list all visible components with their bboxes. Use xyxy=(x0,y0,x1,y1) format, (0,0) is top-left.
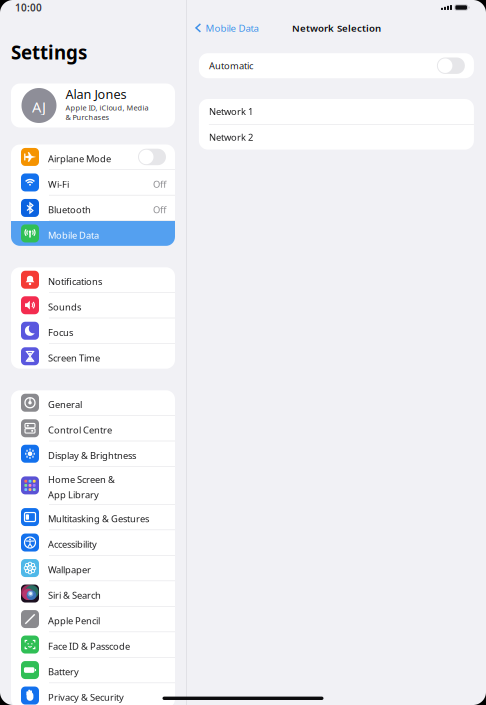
staticText: Network 2 xyxy=(209,131,253,143)
staticText: Bluetooth xyxy=(48,203,91,216)
staticText: Notifications xyxy=(48,275,102,288)
staticText: Wi-Fi xyxy=(48,178,69,190)
staticText: Off xyxy=(153,203,166,216)
staticText: Alan Jones xyxy=(65,85,126,103)
staticText: Multitasking & Gestures xyxy=(48,512,149,525)
staticText: Sounds xyxy=(48,300,81,313)
staticText: 10:00 xyxy=(15,1,42,14)
staticText: Focus xyxy=(48,326,73,339)
button[interactable]: Multitasking & Gestures xyxy=(11,505,175,529)
button[interactable]: Notifications xyxy=(11,267,175,292)
staticText: Apple ID, iCloud, Media xyxy=(65,103,148,113)
staticText: Display & Brightness xyxy=(48,449,136,462)
button[interactable]: Display & Brightness xyxy=(11,441,175,466)
button[interactable]: Control Centre xyxy=(11,416,175,441)
button[interactable]: Mobile Data xyxy=(187,20,262,36)
button[interactable]: Screen Time xyxy=(11,344,175,369)
staticText: Apple Pencil xyxy=(48,614,100,627)
staticText: Control Centre xyxy=(48,423,112,436)
staticText: Privacy & Security xyxy=(48,691,124,703)
button[interactable]: Accessibility xyxy=(11,530,175,555)
staticText: Home Screen & xyxy=(48,473,115,486)
button[interactable]: Wi-Fi xyxy=(11,170,175,195)
staticText: AJ xyxy=(32,97,46,117)
staticText: Settings xyxy=(11,40,87,65)
staticText: & Purchases xyxy=(65,112,109,122)
staticText: Face ID & Passcode xyxy=(48,640,130,652)
staticText: App Library xyxy=(48,488,99,501)
staticText: Off xyxy=(153,178,166,190)
button[interactable]: Face ID & Passcode xyxy=(11,632,175,657)
button[interactable]: Privacy & Security xyxy=(11,683,175,705)
staticText: General xyxy=(48,398,82,411)
staticText: Battery xyxy=(48,665,79,678)
button[interactable]: AJ xyxy=(11,83,175,127)
staticText: Network Selection xyxy=(292,21,381,35)
button[interactable]: Bluetooth xyxy=(11,195,175,220)
staticText: Mobile Data xyxy=(205,21,258,35)
staticText: Airplane Mode xyxy=(48,152,111,165)
button[interactable]: General xyxy=(11,390,175,415)
button[interactable]: Apple Pencil xyxy=(11,607,175,631)
button[interactable]: Network 1 xyxy=(199,99,474,124)
staticText: Screen Time xyxy=(48,351,100,364)
button[interactable]: Battery xyxy=(11,658,175,682)
button[interactable]: Mobile Data xyxy=(11,221,175,246)
button[interactable]: Airplane Mode xyxy=(11,144,175,169)
button[interactable]: Network 2 xyxy=(199,125,474,150)
button[interactable]: Siri & Search xyxy=(11,581,175,606)
button[interactable]: Wallpaper xyxy=(11,556,175,580)
staticText: Wallpaper xyxy=(48,563,91,576)
button[interactable]: Focus xyxy=(11,318,175,343)
button[interactable]: Home Screen & xyxy=(11,467,175,504)
staticText: Mobile Data xyxy=(48,229,99,241)
staticText: Accessibility xyxy=(48,538,97,550)
staticText: Network 1 xyxy=(209,105,253,118)
staticText: Siri & Search xyxy=(48,589,101,601)
button[interactable]: Sounds xyxy=(11,293,175,318)
staticText: Automatic xyxy=(209,59,253,72)
